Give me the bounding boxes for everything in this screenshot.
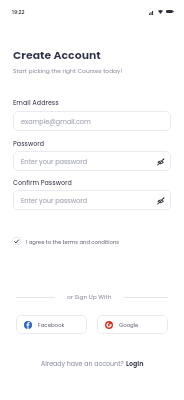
staticText: Password	[13, 139, 45, 148]
button[interactable]: Enter your password	[13, 151, 171, 171]
button[interactable]: Show password	[155, 195, 166, 206]
staticText: Facebook	[38, 321, 65, 329]
button[interactable]: Enter your password	[13, 190, 171, 210]
staticText: Confirm Password	[13, 178, 72, 187]
staticText: Enter your password	[21, 157, 88, 166]
button[interactable]: Google	[97, 315, 168, 334]
staticText: Google	[119, 321, 139, 329]
staticText: Already have an account?	[41, 359, 126, 368]
staticText: Login	[126, 359, 144, 368]
staticText: 19:22	[12, 9, 25, 16]
staticText: Create Account	[13, 48, 101, 63]
staticText: example@gmail.com	[21, 117, 91, 126]
staticText: I agree to the terms and conditions	[26, 238, 120, 245]
staticText: Email Address	[13, 98, 59, 107]
staticText: Enter your password	[21, 196, 88, 205]
button[interactable]: example@gmail.com	[13, 111, 171, 131]
button[interactable]: Login	[126, 359, 144, 368]
button[interactable]: Facebook	[16, 315, 87, 334]
staticText: or Sign Up With	[67, 293, 112, 301]
staticText: Start picking the right Courses today!	[13, 67, 123, 75]
button[interactable]: Show password	[155, 156, 166, 167]
button[interactable]: I agree to the terms and conditions	[12, 237, 120, 245]
